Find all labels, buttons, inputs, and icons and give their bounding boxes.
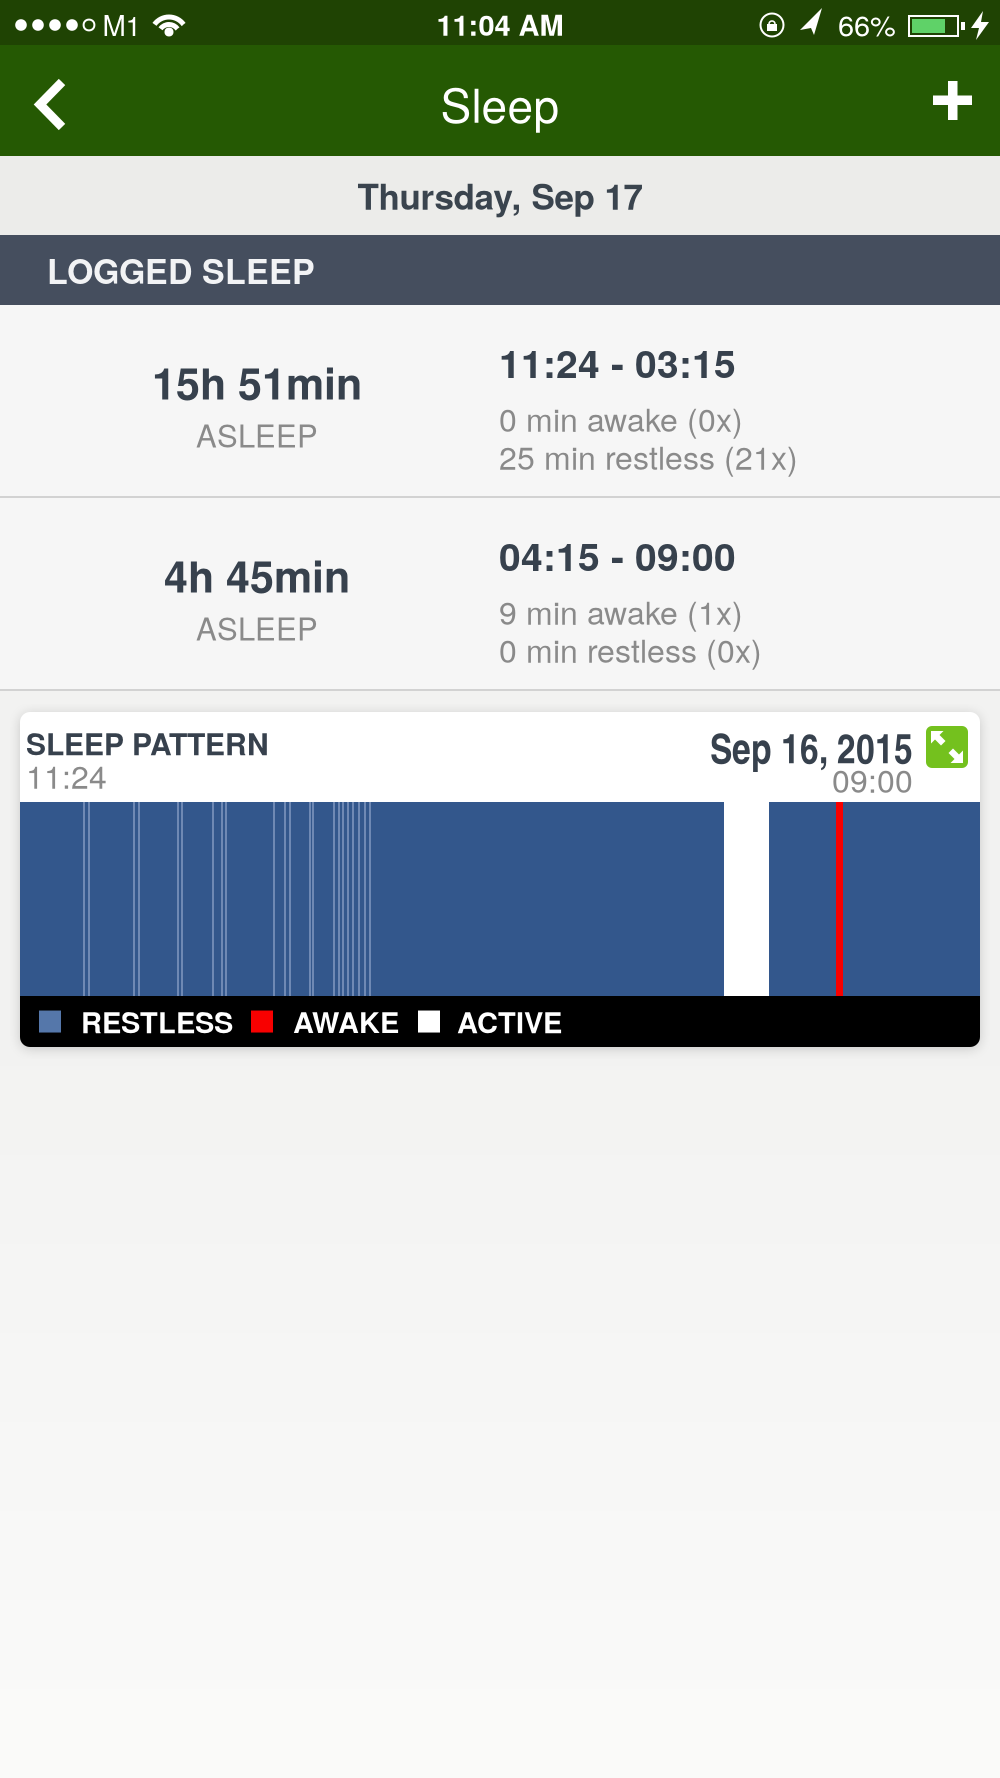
staticText: 11:24 - 03:15	[499, 334, 736, 390]
staticText: Sleep	[440, 70, 559, 136]
staticText: ASLEEP	[196, 605, 318, 649]
staticText: 04:15 - 09:00	[499, 527, 736, 583]
staticText: Sep 16, 2015	[710, 718, 913, 776]
button[interactable]: 15h 51min	[0, 305, 1000, 496]
button[interactable]	[910, 45, 1000, 156]
staticText: M1	[102, 4, 141, 44]
staticText: RESTLESS	[81, 1001, 233, 1042]
button[interactable]: 4h 45min	[0, 498, 1000, 689]
staticText: SLEEP PATTERN	[26, 721, 269, 764]
staticText: 15h 51min	[152, 351, 362, 413]
staticText: AWAKE	[293, 1001, 399, 1042]
staticText: 9 min awake (1x)	[499, 588, 743, 634]
staticText: 09:00	[832, 756, 913, 802]
staticText: Thursday, Sep 17	[357, 170, 642, 220]
button[interactable]	[926, 726, 968, 768]
button[interactable]	[0, 45, 100, 156]
staticText: 25 min restless (21x)	[499, 433, 798, 479]
staticText: ACTIVE	[457, 1001, 562, 1042]
staticText: ASLEEP	[196, 412, 318, 456]
staticText: 11:24	[26, 752, 107, 798]
staticText: 66%	[838, 3, 896, 45]
staticText: 0 min restless (0x)	[499, 626, 762, 672]
staticText: 4h 45min	[164, 544, 350, 606]
staticText: 0 min awake (0x)	[499, 395, 743, 441]
staticText: LOGGED SLEEP	[47, 246, 315, 294]
staticText: 11:04 AM	[436, 3, 563, 45]
